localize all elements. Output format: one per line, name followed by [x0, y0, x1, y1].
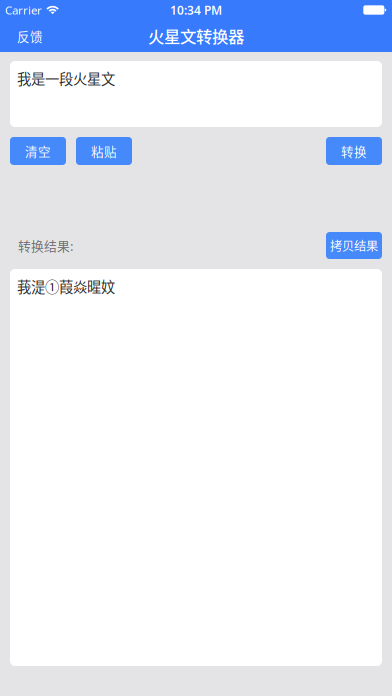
- button[interactable]: 转换: [326, 137, 382, 165]
- staticText: 清空: [25, 142, 51, 160]
- staticText: 转换结果:: [18, 236, 74, 255]
- staticText: 粘贴: [91, 142, 117, 160]
- button[interactable]: 粘贴: [76, 137, 132, 165]
- staticText: 莪湜①葭焱暒妏: [17, 276, 115, 297]
- button[interactable]: 反馈: [0, 20, 57, 52]
- staticText: 我是一段火星文: [17, 68, 115, 89]
- staticText: 拷贝结果: [330, 237, 378, 254]
- button[interactable]: 清空: [10, 137, 66, 165]
- staticText: Carrier: [5, 2, 42, 18]
- staticText: 转换: [341, 142, 367, 160]
- button[interactable]: 拷贝结果: [326, 232, 382, 259]
- staticText: 火星文转换器: [148, 24, 244, 47]
- staticText: 反馈: [17, 27, 43, 45]
- staticText: 10:34 PM: [170, 2, 222, 18]
